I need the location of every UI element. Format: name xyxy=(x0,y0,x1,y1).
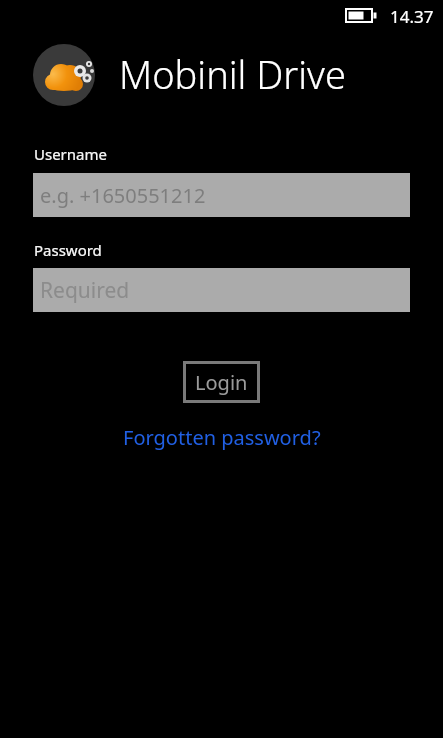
staticText: Username xyxy=(34,144,107,164)
button[interactable]: Login xyxy=(183,361,260,403)
staticText: Required xyxy=(40,276,130,305)
button[interactable]: Required xyxy=(33,268,410,312)
staticText: Login xyxy=(195,369,248,396)
staticText: e.g. +1650551212 xyxy=(40,182,206,209)
button[interactable]: Forgotten password? xyxy=(123,424,321,451)
staticText: Mobinil Drive xyxy=(119,48,346,100)
button[interactable]: e.g. +1650551212 xyxy=(33,173,410,217)
staticText: 14.37 xyxy=(390,5,434,28)
staticText: Password xyxy=(34,240,102,260)
